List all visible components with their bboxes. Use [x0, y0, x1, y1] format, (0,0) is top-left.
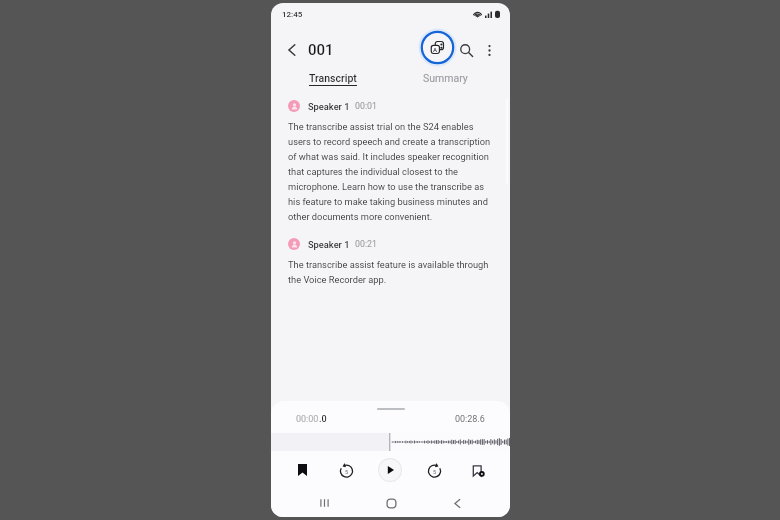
button[interactable]: Summary: [415, 72, 475, 97]
button[interactable]: Bookmark: [281, 451, 324, 489]
staticText: 001: [308, 41, 334, 59]
button[interactable]: Rewind 5 seconds: [324, 451, 368, 489]
button[interactable]: Transcript: [303, 72, 363, 97]
staticText: The transcribe assist trial on the S24 e…: [288, 121, 492, 222]
staticText: 00:28.6: [455, 414, 485, 425]
staticText: 5: [345, 469, 349, 475]
button[interactable]: Add bookmark: [456, 451, 500, 489]
staticText: 00:21: [355, 239, 377, 249]
staticText: .0: [319, 414, 327, 425]
staticText: 00:00: [296, 414, 319, 425]
staticText: Speaker 1: [308, 101, 350, 112]
staticText: The transcribe assist feature is availab…: [288, 259, 492, 285]
staticText: Speaker 1: [308, 239, 350, 250]
staticText: 12:45: [282, 10, 303, 19]
button[interactable]: Recent apps: [291, 489, 358, 517]
button[interactable]: Translate: [419, 29, 456, 66]
button[interactable]: More options: [478, 39, 500, 61]
staticText: 5: [433, 469, 437, 475]
staticText: A: [433, 46, 438, 53]
button[interactable]: Home: [358, 489, 424, 517]
button[interactable]: Play: [368, 451, 412, 489]
button[interactable]: Back: [424, 489, 490, 517]
staticText: Summary: [423, 72, 468, 84]
staticText: Transcript: [309, 72, 357, 84]
button[interactable]: Back: [280, 38, 304, 62]
button[interactable]: Forward 5 seconds: [412, 451, 456, 489]
button[interactable]: Search: [454, 38, 478, 62]
staticText: 00:01: [355, 101, 377, 111]
